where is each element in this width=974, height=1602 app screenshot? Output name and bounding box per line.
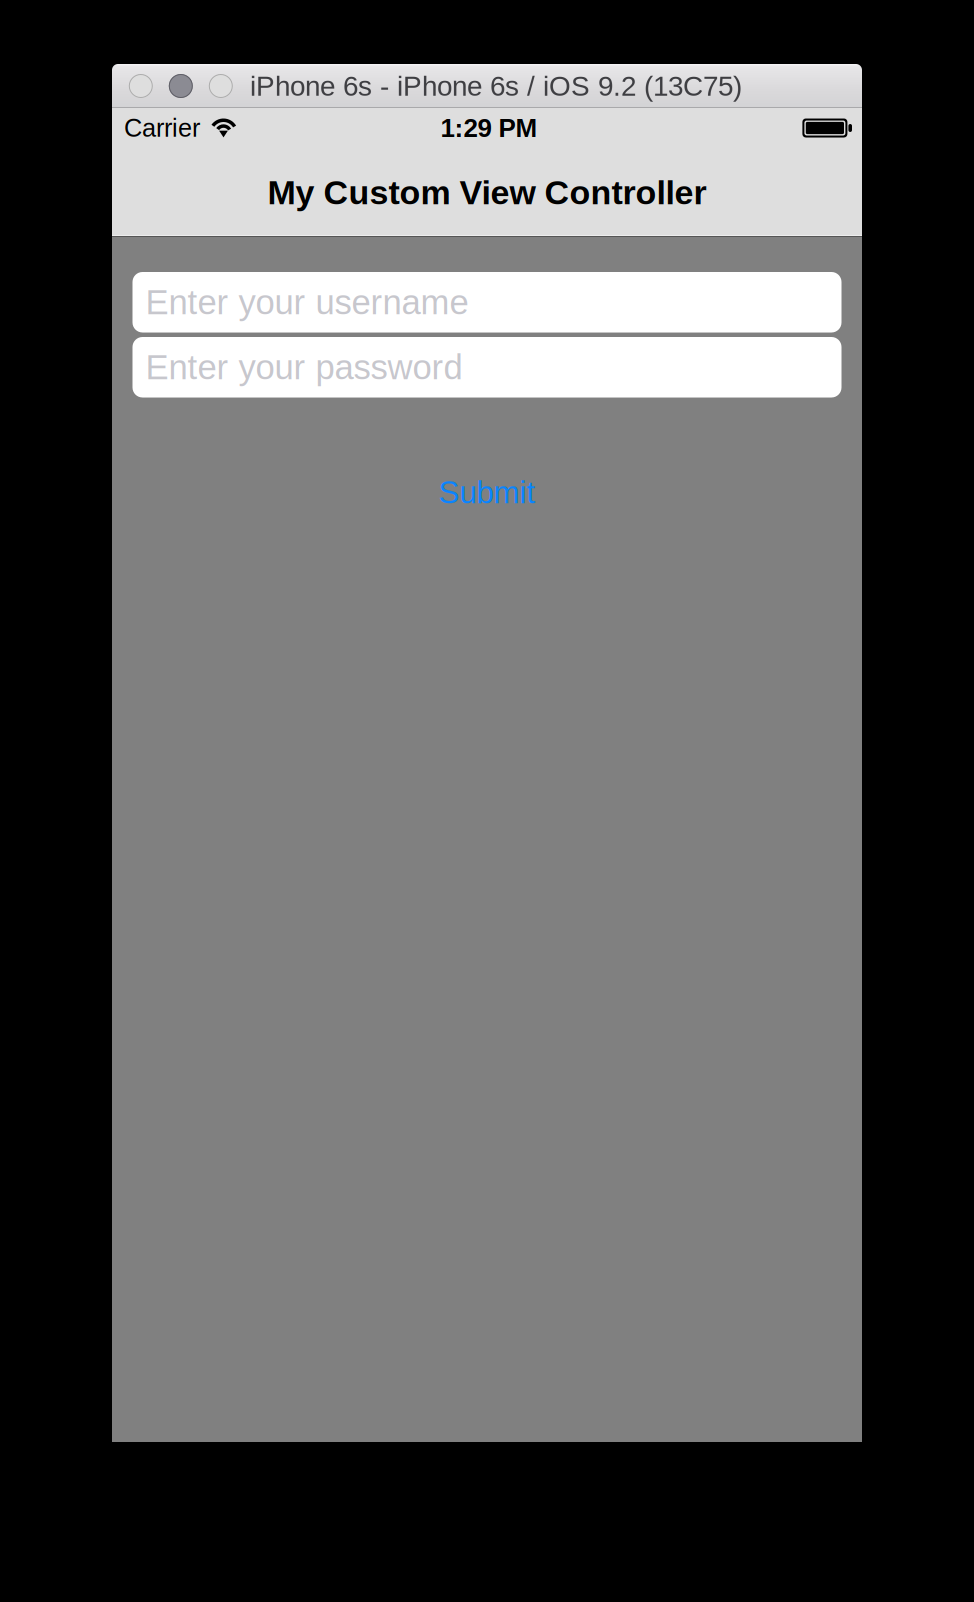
staticText: Carrier [124,114,200,142]
button[interactable]: Minimise [169,74,193,98]
staticText: My Custom View Controller [267,173,706,211]
button[interactable]: Zoom [209,74,233,98]
button[interactable]: Close [129,74,153,98]
staticText: Enter your password [145,348,462,387]
staticText: iPhone 6s - iPhone 6s / iOS 9.2 (13C75) [250,70,742,101]
staticText: 1:29 PM [440,113,537,142]
staticText: Enter your username [145,283,468,322]
staticText: Submit [438,475,535,510]
button[interactable]: Enter your username [132,272,841,332]
button[interactable]: Enter your password [132,337,841,397]
button[interactable]: Submit [387,470,587,514]
